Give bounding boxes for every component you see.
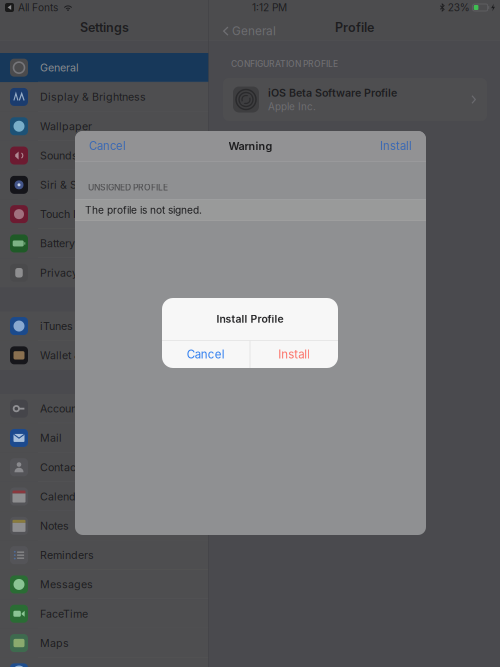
staticText: 1:12 PM: [252, 1, 287, 14]
staticText: Accounts & Passwords: [40, 402, 156, 415]
button[interactable]: Reminders: [0, 540, 209, 570]
staticText: Cancel: [89, 139, 126, 153]
button[interactable]: FaceTime: [0, 599, 209, 628]
button[interactable]: Touch ID & Passcode: [0, 199, 209, 229]
button[interactable]: Privacy: [0, 258, 209, 287]
staticText: Sounds: [40, 149, 78, 162]
button[interactable]: Notes: [0, 511, 209, 540]
button[interactable]: Accounts & Passwords: [0, 394, 209, 423]
button[interactable]: Display & Brightness: [0, 82, 209, 112]
staticText: Install Profile: [216, 313, 283, 325]
staticText: General: [232, 24, 276, 38]
staticText: FaceTime: [40, 607, 88, 620]
button[interactable]: iTunes & App Store: [0, 311, 209, 341]
staticText: Mail: [40, 431, 62, 444]
button[interactable]: Contacts: [0, 453, 209, 482]
staticText: Install: [278, 347, 310, 361]
button[interactable]: General: [221, 18, 278, 44]
staticText: iTunes & App Store: [40, 320, 136, 332]
button[interactable]: Install: [250, 341, 338, 368]
staticText: Notes: [40, 519, 69, 532]
staticText: Messages: [40, 578, 93, 591]
staticText: 23%: [448, 1, 470, 14]
staticText: Wallet & Apple Pay: [40, 349, 136, 362]
staticText: Touch ID & Passcode: [40, 208, 147, 221]
button[interactable]: Messages: [0, 570, 209, 599]
button[interactable]: Sounds: [0, 141, 209, 170]
button[interactable]: General: [0, 53, 209, 82]
button[interactable]: Cancel: [87, 132, 128, 160]
staticText: Maps: [40, 637, 69, 649]
staticText: Apple Inc.: [268, 101, 316, 113]
button[interactable]: Mail: [0, 423, 209, 453]
staticText: Warning: [228, 139, 272, 153]
staticText: Calendar: [40, 490, 86, 503]
staticText: Install: [380, 139, 412, 153]
staticText: All Fonts: [18, 1, 58, 14]
button[interactable]: Battery: [0, 229, 209, 258]
staticText: Profile: [335, 20, 374, 35]
button[interactable]: Calendar: [0, 482, 209, 511]
staticText: Siri & Search: [40, 178, 105, 191]
staticText: Contacts: [40, 461, 85, 474]
button[interactable]: iOS Beta Software Profile: [223, 78, 487, 121]
button[interactable]: Maps: [0, 628, 209, 658]
staticText: Display & Brightness: [40, 90, 146, 103]
staticText: General: [40, 61, 79, 74]
button[interactable]: Wallet & Apple Pay: [0, 341, 209, 370]
staticText: Battery: [40, 237, 75, 250]
button[interactable]: Siri & Search: [0, 170, 209, 199]
staticText: iOS Beta Software Profile: [268, 86, 397, 99]
staticText: Reminders: [40, 549, 94, 562]
button[interactable]: Cancel: [162, 341, 250, 368]
staticText: Privacy: [40, 266, 78, 279]
staticText: Cancel: [187, 347, 225, 361]
button[interactable]: Wallpaper: [0, 112, 209, 141]
staticText: The profile is not signed.: [85, 204, 202, 216]
button[interactable]: Back to All Fonts: [5, 1, 58, 14]
staticText: Wallpaper: [40, 120, 92, 133]
button[interactable]: Safari: [0, 658, 209, 667]
staticText: CONFIGURATION PROFILE: [231, 59, 338, 69]
staticText: Settings: [80, 20, 129, 35]
staticText: UNSIGNED PROFILE: [88, 182, 168, 193]
button[interactable]: Install: [378, 132, 414, 160]
